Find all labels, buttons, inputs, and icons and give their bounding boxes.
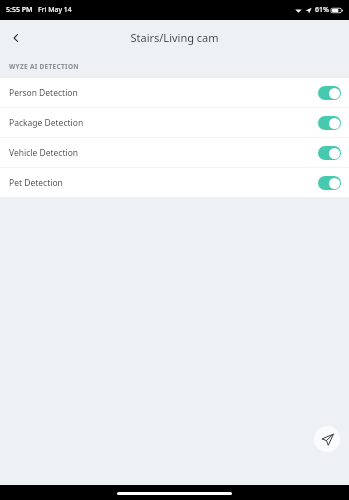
staticText: Person Detection	[9, 87, 318, 99]
staticText: Stairs/Living cam	[130, 30, 219, 45]
button[interactable]: Send feedback	[314, 426, 340, 452]
staticText: Pet Detection	[9, 177, 318, 189]
button[interactable]: Toggle on	[318, 86, 341, 100]
staticText: 61%	[315, 5, 329, 15]
staticText: WYZE AI DETECTION	[9, 62, 79, 71]
button[interactable]: Toggle on	[318, 176, 341, 190]
staticText: Package Detection	[9, 117, 318, 129]
button[interactable]: Person Detection	[0, 78, 349, 107]
staticText: 5:55 PM	[6, 5, 33, 15]
button[interactable]: Package Detection	[0, 108, 349, 137]
button[interactable]: Vehicle Detection	[0, 138, 349, 167]
button[interactable]: Pet Detection	[0, 168, 349, 197]
staticText: Vehicle Detection	[9, 147, 318, 159]
staticText: Fri May 14	[38, 5, 72, 15]
button[interactable]: Toggle on	[318, 116, 341, 130]
button[interactable]: Toggle on	[318, 146, 341, 160]
button[interactable]: Back	[0, 22, 32, 54]
